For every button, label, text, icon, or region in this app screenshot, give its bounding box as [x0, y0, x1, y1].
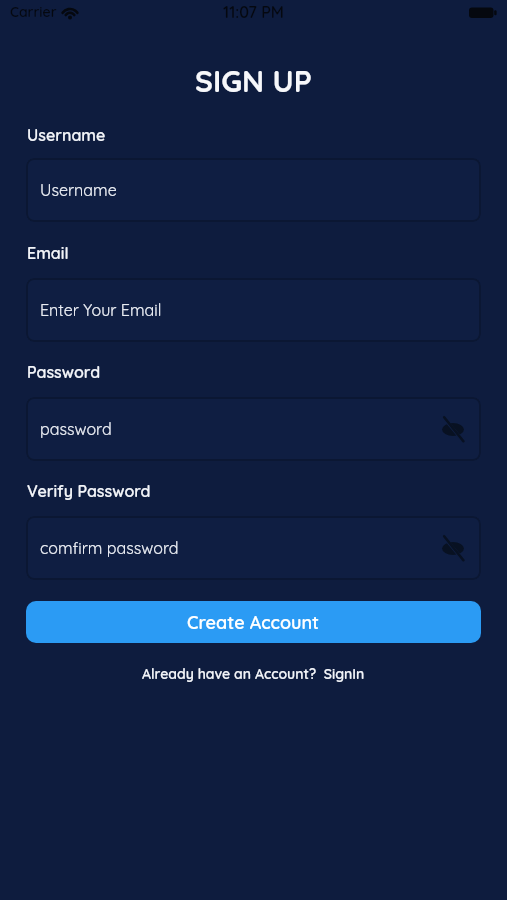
staticText: password: [40, 419, 112, 439]
staticText: 11:07 PM: [223, 2, 284, 22]
staticText: Create Account: [187, 611, 320, 634]
button[interactable]: comfirm password: [26, 516, 481, 580]
staticText: Already have an Account? SignIn: [142, 665, 365, 683]
button[interactable]: Enter Your Email: [26, 278, 481, 342]
staticText: SIGN UP: [195, 62, 312, 100]
button[interactable]: [440, 535, 466, 561]
button[interactable]: Already have an Account? SignIn: [142, 665, 365, 683]
staticText: Carrier: [10, 3, 57, 21]
staticText: Username: [27, 125, 106, 145]
button[interactable]: password: [26, 397, 481, 461]
button[interactable]: Create Account: [26, 601, 481, 643]
staticText: Username: [40, 180, 117, 200]
staticText: Enter Your Email: [40, 300, 162, 320]
staticText: Verify Password: [27, 481, 151, 501]
button[interactable]: Username: [26, 158, 481, 222]
staticText: Password: [27, 362, 101, 382]
staticText: Email: [27, 243, 69, 263]
staticText: comfirm password: [40, 538, 179, 558]
button[interactable]: [440, 416, 466, 442]
